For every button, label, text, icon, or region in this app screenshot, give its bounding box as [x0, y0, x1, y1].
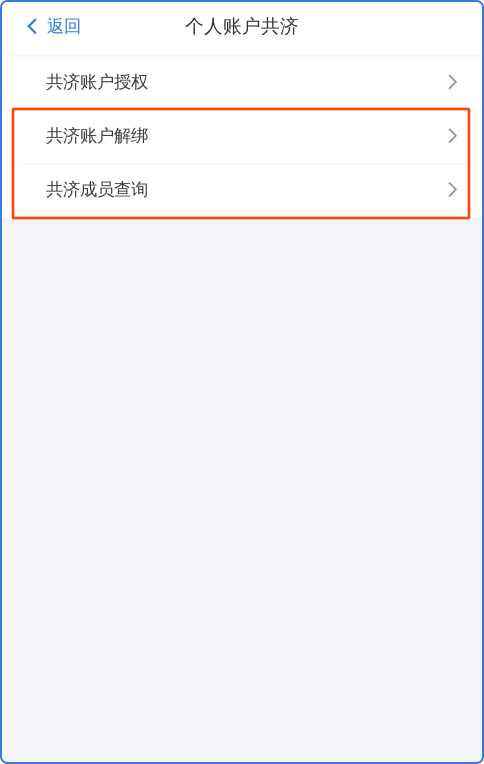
- staticText: 个人账户共济: [185, 15, 299, 38]
- button[interactable]: 共济账户授权: [0, 56, 484, 109]
- staticText: 共济成员查询: [46, 179, 148, 200]
- staticText: 共济账户解绑: [46, 125, 148, 146]
- button[interactable]: 共济账户解绑: [0, 110, 484, 163]
- button[interactable]: 共济成员查询: [0, 164, 484, 217]
- button[interactable]: 返回: [0, 2, 95, 55]
- staticText: 共济账户授权: [46, 71, 148, 93]
- staticText: 返回: [47, 16, 81, 37]
